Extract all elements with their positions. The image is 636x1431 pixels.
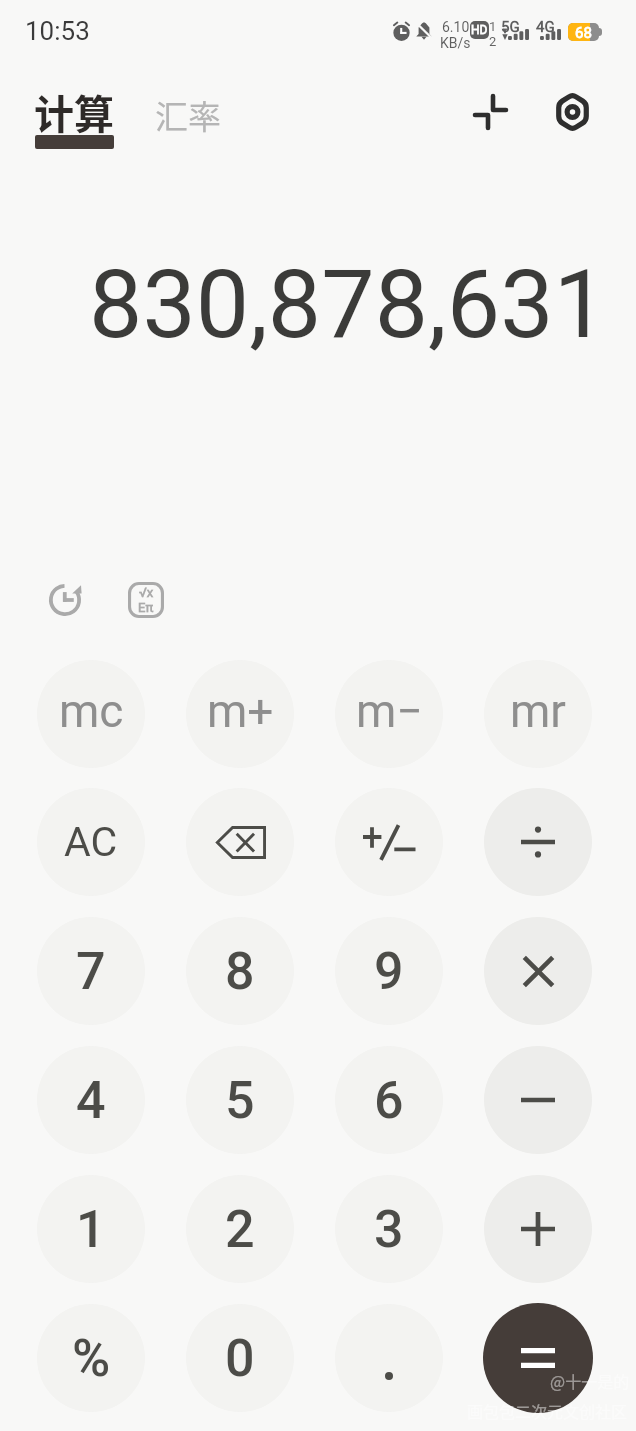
button[interactable]: 3 (335, 1175, 443, 1283)
staticText: 画包包二次元文创社区 (467, 1399, 628, 1422)
button[interactable]: m+ (186, 660, 294, 768)
staticText: 10:53 (25, 16, 90, 46)
staticText: √x (139, 585, 154, 600)
button[interactable]: 6 (335, 1046, 443, 1154)
button[interactable] (186, 788, 294, 896)
staticText: 4 (76, 1070, 106, 1131)
staticText: 830,878,631 (89, 249, 607, 360)
button[interactable] (484, 1175, 592, 1283)
button[interactable]: 计算 (22, 73, 126, 165)
button[interactable] (484, 1046, 592, 1154)
staticText: 2 (225, 1199, 255, 1260)
button[interactable]: 9 (335, 917, 443, 1025)
staticText: HD (471, 23, 488, 37)
staticText: mc (59, 684, 124, 738)
staticText: % (72, 1328, 111, 1389)
staticText: 68 (575, 24, 592, 42)
button[interactable]: 2 (186, 1175, 294, 1283)
staticText: 4G (536, 18, 555, 36)
button[interactable]: mc (37, 660, 145, 768)
button[interactable]: AC (37, 788, 145, 896)
staticText: 9 (374, 941, 404, 1002)
button[interactable]: Collapse (462, 84, 518, 140)
button[interactable]: 汇率 (143, 81, 233, 149)
staticText: 1 (489, 19, 497, 34)
button[interactable]: % (37, 1304, 145, 1412)
button[interactable]: m− (335, 660, 443, 768)
button[interactable] (484, 788, 592, 896)
button[interactable]: 7 (37, 917, 145, 1025)
staticText: m− (356, 684, 423, 738)
staticText: 1 (76, 1199, 106, 1260)
staticText: 5G (501, 18, 520, 36)
staticText: 8 (225, 941, 255, 1002)
button[interactable] (483, 1303, 593, 1413)
staticText: m+ (207, 684, 274, 738)
button[interactable]: History (37, 572, 93, 628)
button[interactable]: 5 (186, 1046, 294, 1154)
staticText: 计算 (34, 83, 114, 141)
staticText: 2 (489, 34, 497, 49)
staticText: 7 (76, 941, 106, 1002)
staticText: 3 (374, 1199, 404, 1260)
staticText: Eπ (138, 600, 154, 615)
button[interactable]: Settings (544, 84, 600, 140)
button[interactable]: Scientific mode (118, 572, 174, 628)
staticText: mr (510, 684, 566, 738)
staticText: 6.10 (442, 19, 470, 35)
staticText: 6 (374, 1070, 404, 1131)
button[interactable]: mr (484, 660, 592, 768)
button[interactable]: 4 (37, 1046, 145, 1154)
staticText: 0 (225, 1328, 255, 1389)
button[interactable] (335, 788, 443, 896)
staticText: AC (64, 818, 118, 866)
button[interactable]: 1 (37, 1175, 145, 1283)
staticText: KB/s (440, 35, 471, 51)
button[interactable] (484, 917, 592, 1025)
button[interactable]: 0 (186, 1304, 294, 1412)
staticText: @十一是的 (550, 1369, 630, 1392)
button[interactable]: 8 (186, 917, 294, 1025)
button[interactable] (335, 1304, 443, 1412)
staticText: 5 (225, 1070, 255, 1131)
